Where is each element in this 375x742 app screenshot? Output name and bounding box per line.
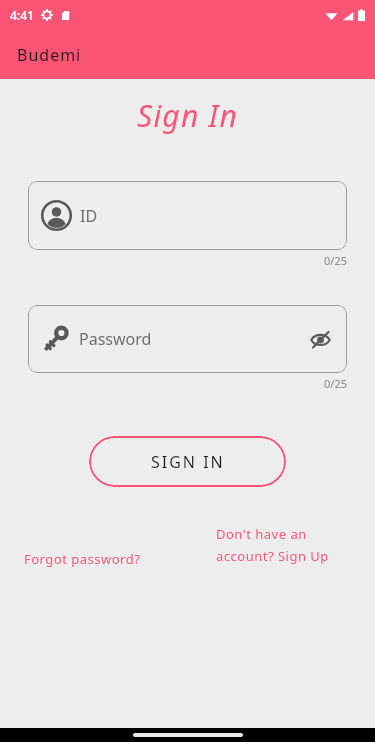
button[interactable]: ID <box>28 181 347 250</box>
button[interactable]: Show password <box>306 325 334 353</box>
button[interactable]: Forgot password? <box>22 548 143 570</box>
staticText: ID <box>80 205 98 227</box>
staticText: Budemi <box>17 44 82 66</box>
staticText: 0/25 <box>324 253 347 268</box>
staticText: Don't have an account? Sign Up <box>216 525 353 565</box>
button[interactable]: SIGN IN <box>89 436 286 487</box>
staticText: Forgot password? <box>24 550 141 568</box>
staticText: 0/25 <box>324 376 347 391</box>
button[interactable]: Don't have an account? Sign Up <box>216 523 353 567</box>
staticText: SIGN IN <box>151 451 225 473</box>
staticText: 4:41 <box>10 7 34 23</box>
button[interactable]: Password <box>28 305 347 373</box>
staticText: Password <box>79 328 152 350</box>
staticText: Sign In <box>137 95 238 136</box>
